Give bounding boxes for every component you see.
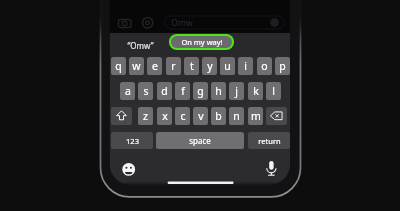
button[interactable]: f bbox=[175, 82, 190, 100]
button[interactable]: w bbox=[129, 57, 144, 75]
button[interactable]: o bbox=[257, 57, 272, 75]
staticText: g bbox=[197, 84, 204, 98]
button[interactable]: r bbox=[166, 57, 181, 75]
staticText: v bbox=[198, 109, 204, 123]
staticText: i bbox=[244, 59, 247, 73]
staticText: c bbox=[180, 109, 186, 123]
staticText: t bbox=[190, 59, 194, 73]
button[interactable]: “Omw” bbox=[112, 35, 168, 55]
staticText: h bbox=[215, 84, 222, 98]
staticText: s bbox=[143, 84, 149, 98]
staticText: a bbox=[125, 84, 131, 98]
button[interactable]: c bbox=[175, 107, 190, 125]
button[interactable]: a bbox=[120, 82, 135, 100]
staticText: r bbox=[171, 59, 176, 73]
button[interactable]: s bbox=[138, 82, 153, 100]
staticText: f bbox=[181, 84, 185, 98]
button[interactable] bbox=[266, 107, 287, 125]
button[interactable]: return bbox=[248, 132, 290, 149]
button[interactable]: m bbox=[248, 107, 263, 125]
staticText: j bbox=[235, 84, 238, 98]
button[interactable]: x bbox=[157, 107, 172, 125]
staticText: y bbox=[207, 59, 213, 73]
staticText: q bbox=[115, 59, 122, 73]
button[interactable] bbox=[111, 107, 132, 125]
button[interactable]: Camera bbox=[118, 17, 132, 29]
button[interactable]: u bbox=[220, 57, 235, 75]
staticText: w bbox=[132, 59, 141, 73]
button[interactable]: 123 bbox=[111, 132, 153, 149]
staticText: p bbox=[279, 59, 286, 73]
button[interactable]: On my way! bbox=[169, 34, 234, 50]
staticText: On my way! bbox=[181, 37, 223, 47]
staticText: space bbox=[189, 135, 211, 146]
staticText: o bbox=[261, 59, 268, 73]
button[interactable]: v bbox=[193, 107, 208, 125]
button[interactable]: Send bbox=[270, 18, 280, 28]
staticText: k bbox=[253, 84, 259, 98]
button[interactable] bbox=[164, 15, 284, 29]
staticText: n bbox=[233, 109, 240, 123]
staticText: e bbox=[152, 59, 158, 73]
staticText: “Omw” bbox=[127, 40, 154, 51]
staticText: u bbox=[224, 59, 231, 73]
button[interactable]: n bbox=[229, 107, 244, 125]
button[interactable]: j bbox=[229, 82, 244, 100]
button[interactable]: k bbox=[248, 82, 263, 100]
button[interactable]: t bbox=[184, 57, 199, 75]
staticText: return bbox=[258, 136, 281, 146]
staticText: z bbox=[143, 109, 148, 123]
button[interactable]: e bbox=[147, 57, 162, 75]
button[interactable]: d bbox=[157, 82, 172, 100]
button[interactable]: p bbox=[275, 57, 290, 75]
button[interactable]: g bbox=[193, 82, 208, 100]
staticText: x bbox=[162, 109, 168, 123]
button[interactable]: q bbox=[111, 57, 126, 75]
button[interactable]: Dictate bbox=[265, 160, 279, 176]
button[interactable]: i bbox=[238, 57, 253, 75]
staticText: 123 bbox=[126, 136, 139, 146]
staticText: m bbox=[251, 109, 261, 123]
button[interactable]: z bbox=[138, 107, 153, 125]
button[interactable]: space bbox=[156, 132, 244, 149]
button[interactable]: Apps bbox=[143, 17, 155, 29]
staticText: l bbox=[272, 84, 275, 98]
button[interactable]: b bbox=[211, 107, 226, 125]
staticText: b bbox=[215, 109, 222, 123]
button[interactable]: h bbox=[211, 82, 226, 100]
staticText: Omw bbox=[171, 17, 193, 29]
button[interactable]: y bbox=[202, 57, 217, 75]
button[interactable]: Emoji bbox=[122, 163, 136, 177]
button[interactable]: l bbox=[266, 82, 281, 100]
staticText: d bbox=[161, 84, 168, 98]
